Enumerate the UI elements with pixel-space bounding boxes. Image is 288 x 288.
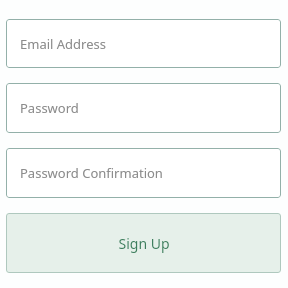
staticText: Password bbox=[20, 99, 79, 117]
button[interactable]: Password Confirmation bbox=[6, 148, 281, 198]
button[interactable]: Sign Up bbox=[6, 213, 281, 273]
staticText: Password Confirmation bbox=[20, 164, 163, 182]
button[interactable]: Password bbox=[6, 83, 281, 133]
staticText: Email Address bbox=[20, 35, 106, 53]
button[interactable]: Email Address bbox=[6, 19, 281, 68]
staticText: Sign Up bbox=[118, 234, 170, 253]
